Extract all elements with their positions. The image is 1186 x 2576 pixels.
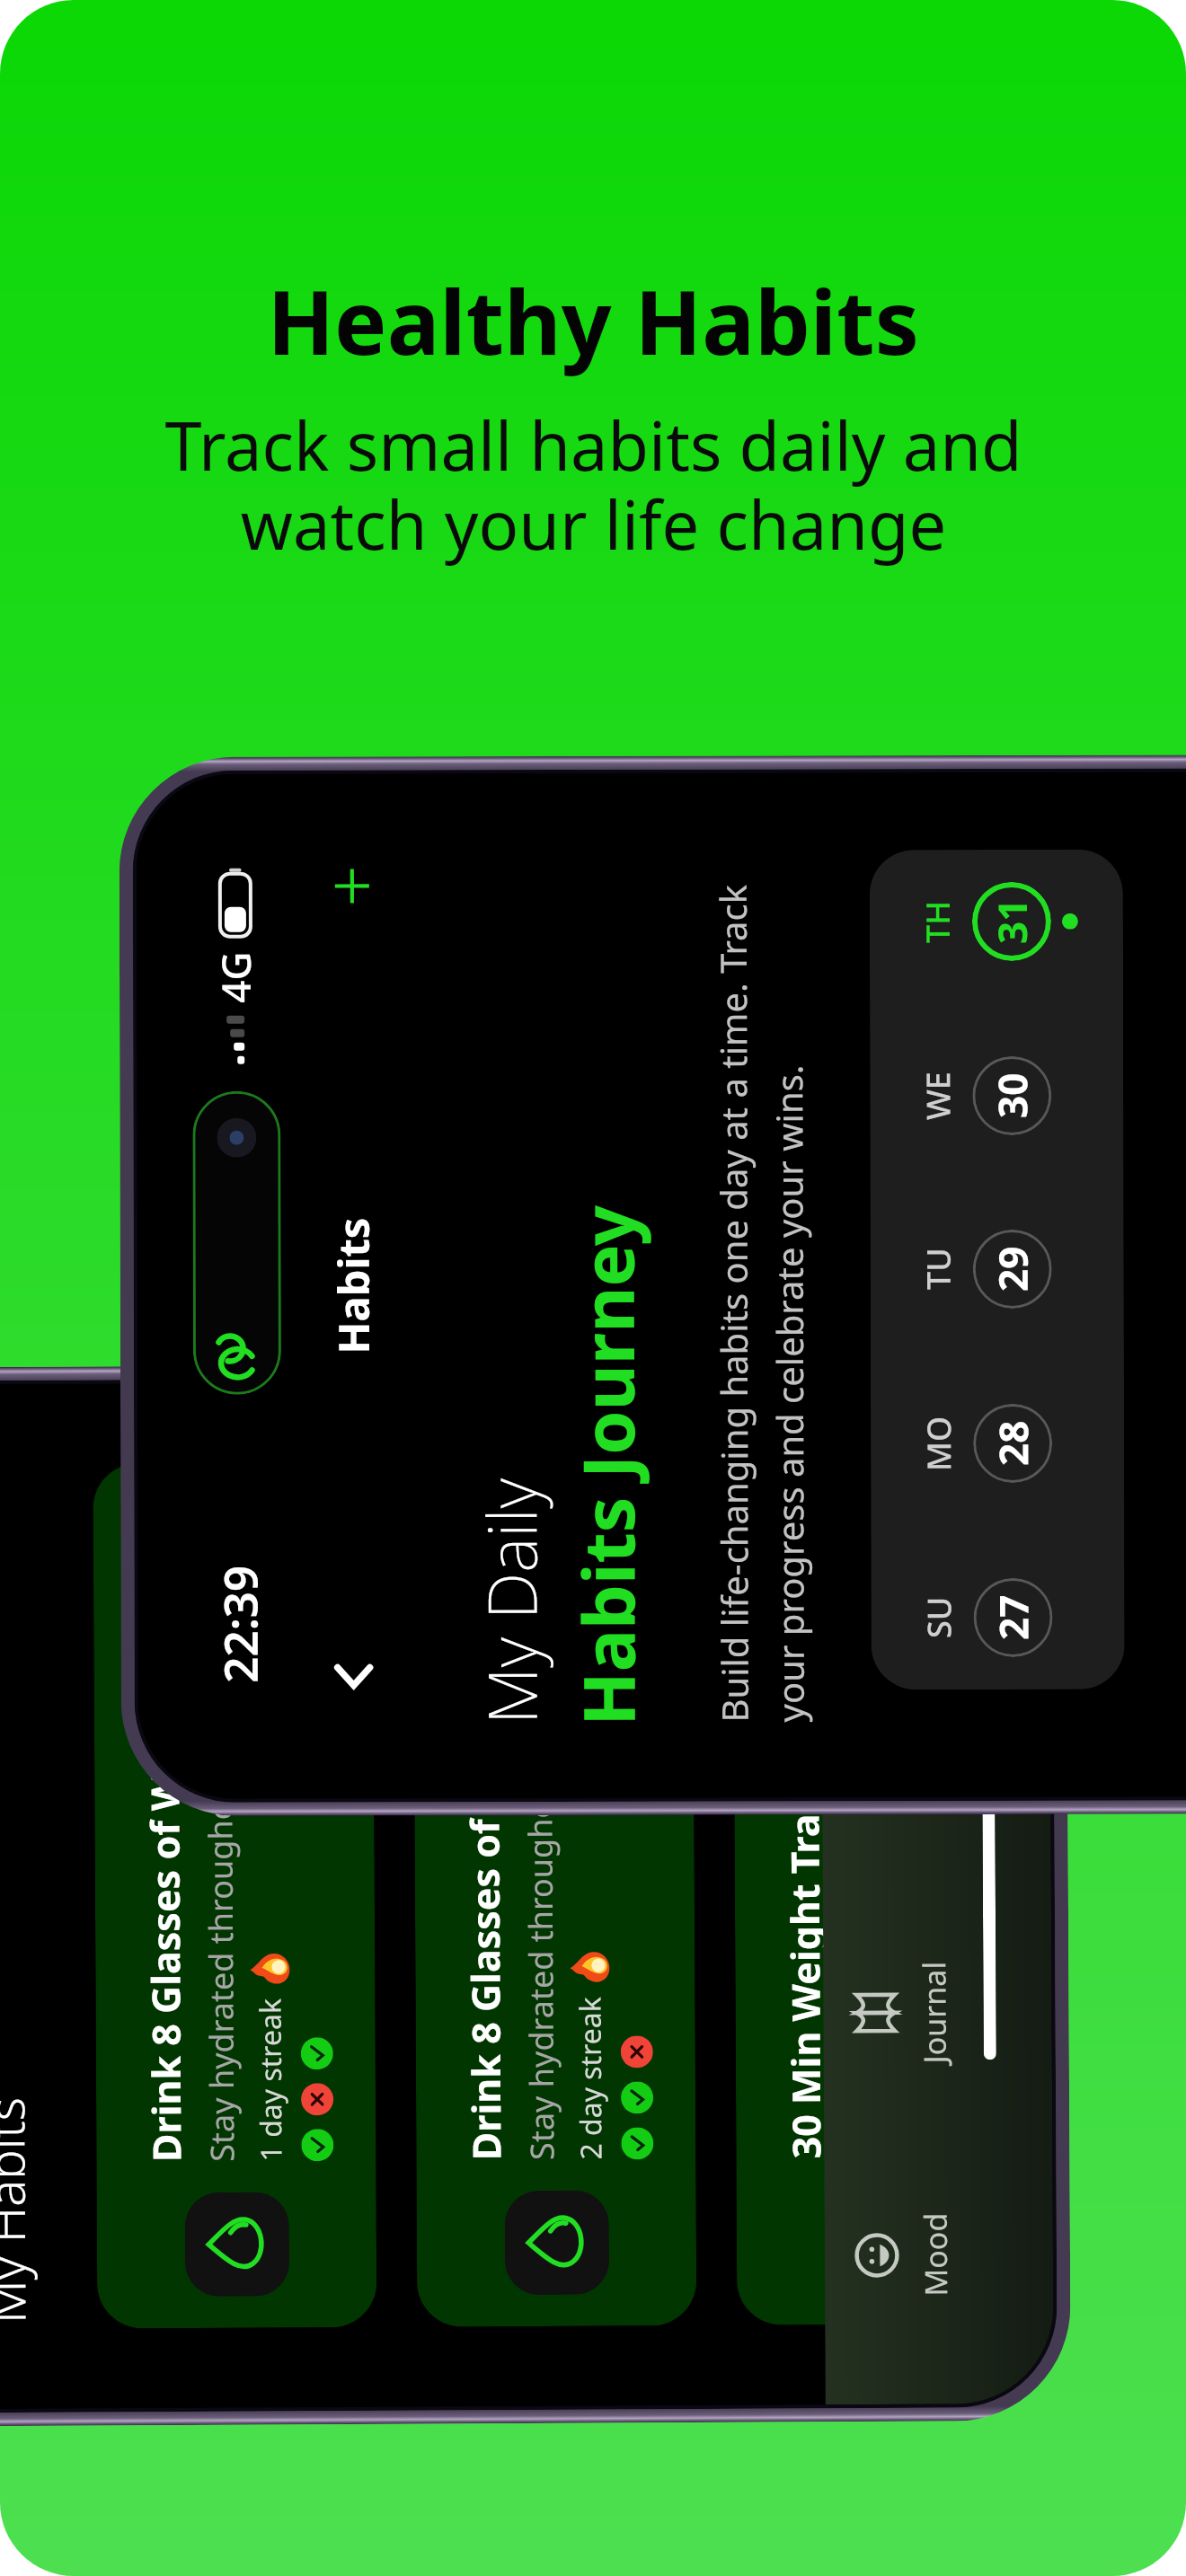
staticText: Drink 8 Glasses of Water xyxy=(457,1691,512,2160)
staticText: Stay hydrated throughout xyxy=(518,1767,564,2160)
button[interactable] xyxy=(621,2036,653,2068)
staticText: 30 Min Weight Training xyxy=(777,1716,832,2159)
staticText: 3 day streak xyxy=(890,1995,930,2158)
button[interactable] xyxy=(301,2083,334,2116)
staticText: 27 xyxy=(986,1594,1040,1640)
button[interactable]: Stats xyxy=(849,1678,954,1864)
staticText: My Daily xyxy=(465,1478,557,1725)
staticText: Stats xyxy=(912,1735,954,1806)
staticText: My Habits xyxy=(0,2097,40,2324)
staticText: 30 xyxy=(985,1072,1039,1118)
staticText: Drink 8 Glasses of Water xyxy=(137,1693,193,2162)
staticText: Track small habits daily and watch your … xyxy=(164,400,1022,569)
button[interactable] xyxy=(621,2081,653,2114)
staticText: WE xyxy=(916,1072,960,1120)
staticText: 1 day streak xyxy=(250,1998,291,2162)
staticText: MO xyxy=(917,1416,961,1471)
staticText: 2 day streak xyxy=(570,1996,611,2160)
button[interactable] xyxy=(940,2034,973,2066)
button[interactable]: Drink 8 Glasses of Water xyxy=(413,1461,697,2327)
button[interactable]: Journal xyxy=(850,1920,955,2105)
button[interactable]: Mood xyxy=(851,2162,957,2348)
button[interactable]: WE xyxy=(910,1051,1084,1141)
staticText: 4G xyxy=(208,951,262,1003)
button[interactable]: Habits xyxy=(324,1217,382,1354)
staticText: TH xyxy=(915,900,960,943)
staticText: Habits Journey xyxy=(558,1204,657,1726)
button[interactable] xyxy=(621,2127,654,2160)
button[interactable]: Profile xyxy=(847,1436,953,1621)
button[interactable]: 30 Min Weight Training xyxy=(733,1459,1017,2325)
staticText: 28 xyxy=(986,1420,1040,1466)
staticText: 31 xyxy=(985,898,1039,944)
staticText: Mood xyxy=(914,2213,956,2296)
button[interactable]: SU xyxy=(911,1573,1085,1663)
staticText: 22:39 xyxy=(208,1565,270,1683)
button[interactable]: TH xyxy=(910,876,1084,967)
staticText: 29 xyxy=(985,1246,1039,1292)
button[interactable]: MO xyxy=(911,1398,1085,1488)
button[interactable] xyxy=(301,2129,334,2161)
button[interactable]: Add habit xyxy=(312,846,392,926)
button[interactable] xyxy=(301,2037,333,2070)
staticText: Healthy Habits xyxy=(267,260,919,380)
button[interactable]: Back xyxy=(314,1637,393,1716)
button[interactable]: Drink 8 Glasses of Water xyxy=(93,1462,377,2329)
staticText: TU xyxy=(916,1248,960,1290)
staticText: SU xyxy=(917,1596,961,1638)
button[interactable]: TU xyxy=(911,1224,1084,1314)
staticText: Build life-changing habits one day at a … xyxy=(708,884,815,1722)
staticText: Journal xyxy=(913,1961,955,2064)
staticText: Build strength and muscle xyxy=(837,1760,884,2159)
staticText: Stay hydrated throughout xyxy=(198,1768,244,2162)
